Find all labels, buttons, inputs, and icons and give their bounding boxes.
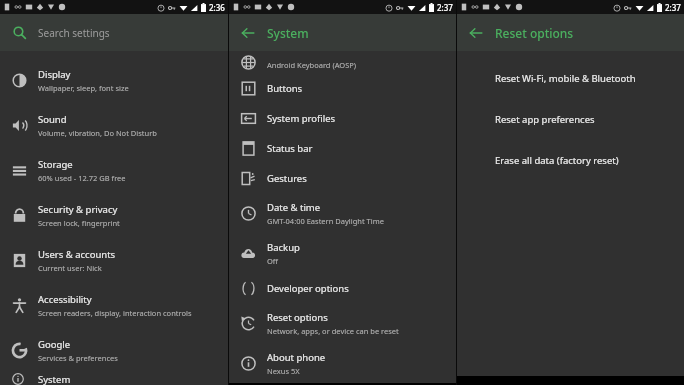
staticText: Storage (38, 158, 73, 171)
staticText: Users & accounts (38, 248, 116, 261)
staticText: Reset app preferences (495, 113, 595, 126)
staticText: Off (267, 256, 279, 266)
button[interactable]: Google (0, 328, 228, 373)
staticText: Buttons (267, 82, 303, 95)
staticText: Accessibility (38, 293, 92, 306)
staticText: 60% used - 12.72 GB free (38, 173, 126, 183)
button[interactable]: Erase all data (factory reset) (457, 145, 684, 175)
staticText: Wallpaper, sleep, font size (38, 83, 129, 93)
staticText: Display (38, 68, 71, 81)
button[interactable]: Buttons (229, 73, 456, 103)
button[interactable]: System (0, 373, 228, 385)
button[interactable]: Reset app preferences (457, 104, 684, 134)
button[interactable]: Developer options (229, 273, 456, 303)
staticText: Volume, vibration, Do Not Disturb (38, 128, 157, 138)
staticText: Nexus 5X (267, 366, 300, 376)
staticText: Date & time (267, 201, 321, 214)
staticText: Screen lock, fingerprint (38, 218, 120, 228)
staticText: Reset Wi-Fi, mobile & Bluetooth (495, 72, 636, 85)
staticText: System profiles (267, 112, 336, 125)
staticText: 2:36 (209, 2, 225, 13)
other: Search (0, 26, 38, 39)
staticText: Security & privacy (38, 203, 118, 216)
staticText: Developer options (267, 282, 349, 295)
button[interactable]: Reset Wi-Fi, mobile & Bluetooth (457, 63, 684, 93)
staticText: Gestures (267, 172, 307, 185)
button[interactable]: Status bar (229, 133, 456, 163)
staticText: About phone (267, 351, 326, 364)
staticText: System (267, 25, 309, 41)
button[interactable]: Users & accounts (0, 238, 228, 283)
button[interactable]: Search (0, 14, 228, 51)
staticText: Screen readers, display, interaction con… (38, 308, 192, 318)
staticText: Services & preferences (38, 353, 118, 363)
button[interactable]: Date & time (229, 193, 456, 233)
staticText: Google (38, 338, 71, 351)
staticText: Android Keyboard (AOSP) (267, 60, 357, 70)
staticText: Current user: Nick (38, 263, 102, 273)
staticText: System (38, 373, 71, 385)
staticText: 2:37 (437, 2, 453, 13)
button[interactable]: Backup (229, 233, 456, 273)
staticText: Search settings (38, 26, 110, 40)
staticText: Reset options (267, 311, 328, 324)
button[interactable]: Sound (0, 103, 228, 148)
staticText: GMT-04:00 Eastern Daylight Time (267, 216, 384, 226)
staticText: 2:37 (665, 2, 681, 13)
staticText: Reset options (495, 25, 574, 41)
button[interactable]: Back (229, 14, 267, 51)
staticText: Erase all data (factory reset) (495, 154, 619, 167)
button[interactable]: Reset options (229, 303, 456, 343)
staticText: Status bar (267, 142, 313, 155)
button[interactable]: Accessibility (0, 283, 228, 328)
button[interactable]: Storage (0, 148, 228, 193)
button[interactable]: About phone (229, 343, 456, 383)
button[interactable]: Back (457, 14, 495, 51)
button[interactable]: Gestures (229, 163, 456, 193)
button[interactable]: System profiles (229, 103, 456, 133)
staticText: Backup (267, 241, 300, 254)
staticText: Network, apps, or device can be reset (267, 326, 399, 336)
button[interactable]: Security & privacy (0, 193, 228, 238)
staticText: Sound (38, 113, 67, 126)
button[interactable]: Display (0, 58, 228, 103)
